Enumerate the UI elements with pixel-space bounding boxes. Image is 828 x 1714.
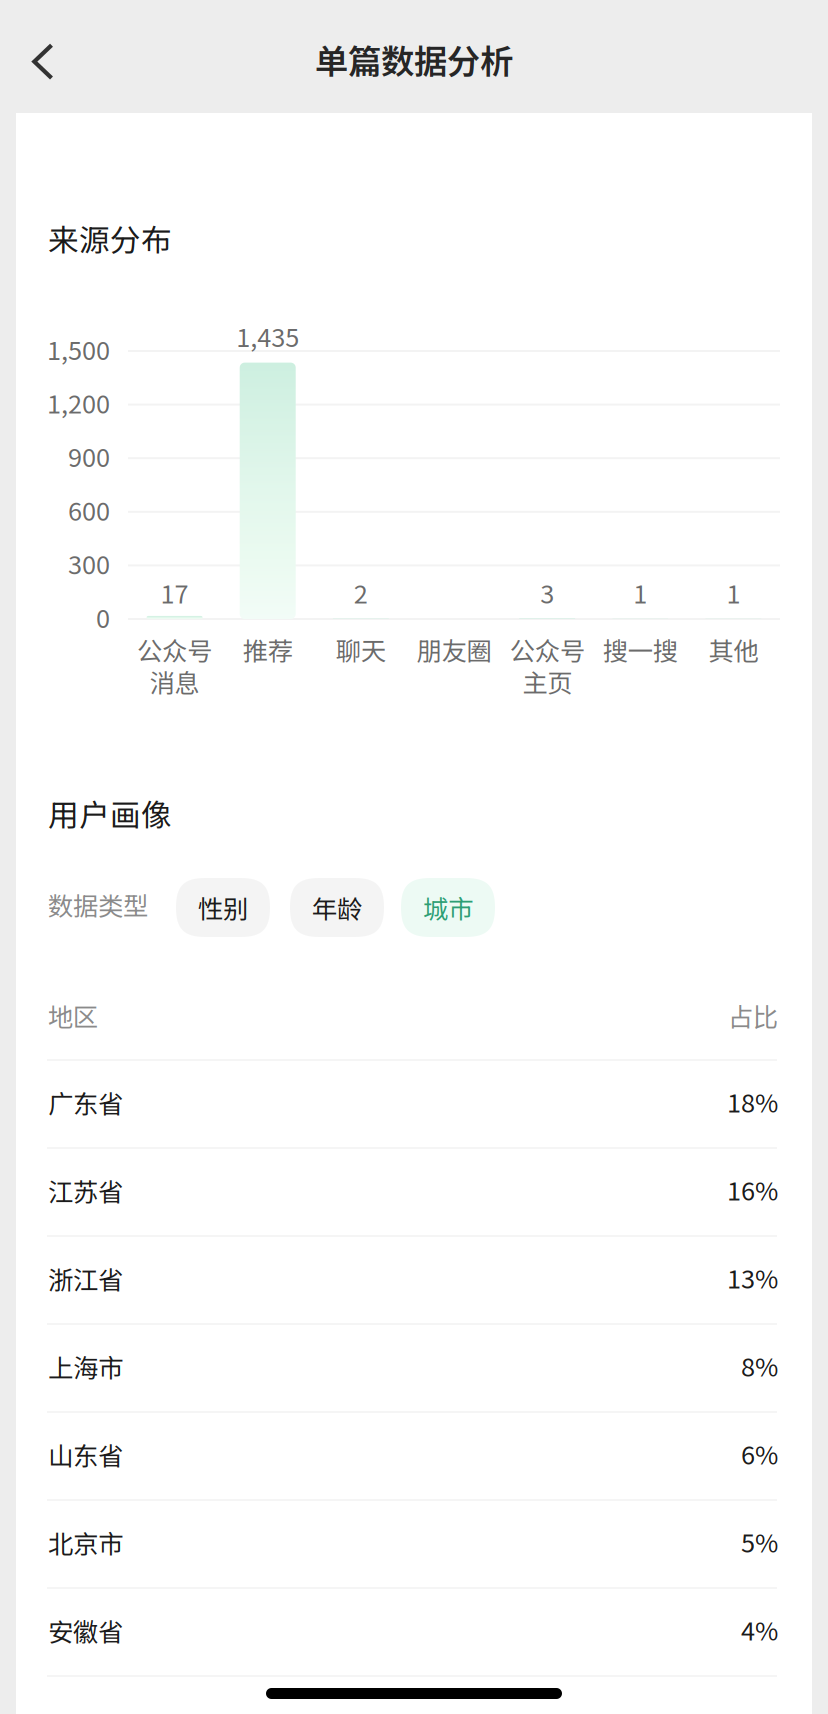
staticText: 5% bbox=[741, 1523, 778, 1560]
staticText: 性别 bbox=[198, 889, 248, 926]
staticText: 推荐 bbox=[243, 631, 293, 668]
button[interactable]: Back bbox=[0, 0, 80, 113]
staticText: 江苏省 bbox=[48, 1172, 123, 1209]
staticText: 0 bbox=[96, 598, 110, 635]
staticText: 900 bbox=[68, 438, 110, 474]
staticText: 城市 bbox=[423, 889, 473, 926]
staticText: 上海市 bbox=[48, 1348, 123, 1385]
staticText: 地区 bbox=[48, 997, 98, 1034]
staticText: 用户画像 bbox=[48, 791, 172, 835]
button[interactable]: 城市 bbox=[401, 878, 495, 937]
button[interactable]: 山东省 bbox=[48, 1412, 778, 1500]
button[interactable]: 年龄 bbox=[290, 878, 384, 937]
staticText: 搜一搜 bbox=[603, 631, 678, 668]
staticText: 公众号 bbox=[510, 631, 585, 668]
staticText: 来源分布 bbox=[48, 216, 172, 260]
button[interactable]: 安徽省 bbox=[48, 1588, 778, 1676]
staticText: 广东省 bbox=[48, 1084, 123, 1121]
button[interactable]: 上海市 bbox=[48, 1324, 778, 1412]
staticText: 占比 bbox=[728, 997, 778, 1034]
staticText: 4% bbox=[741, 1611, 778, 1648]
staticText: 13% bbox=[727, 1259, 778, 1296]
staticText: 安徽省 bbox=[48, 1612, 123, 1649]
staticText: 浙江省 bbox=[48, 1260, 123, 1297]
staticText: 其他 bbox=[708, 631, 758, 668]
staticText: 消息 bbox=[150, 663, 200, 700]
button[interactable]: 浙江省 bbox=[48, 1236, 778, 1324]
staticText: 6% bbox=[741, 1435, 778, 1472]
staticText: 1 bbox=[633, 574, 647, 611]
button[interactable]: 性别 bbox=[176, 878, 270, 937]
staticText: 8% bbox=[741, 1347, 778, 1384]
staticText: 1 bbox=[726, 574, 740, 611]
staticText: 600 bbox=[68, 491, 110, 528]
staticText: 聊天 bbox=[336, 631, 386, 668]
staticText: 1,500 bbox=[47, 330, 110, 367]
staticText: 单篇数据分析 bbox=[315, 35, 513, 83]
staticText: 山东省 bbox=[48, 1436, 123, 1473]
staticText: 1,435 bbox=[236, 318, 299, 354]
staticText: 数据类型 bbox=[48, 886, 148, 923]
staticText: 3 bbox=[540, 574, 554, 611]
staticText: 年龄 bbox=[312, 889, 362, 926]
staticText: 主页 bbox=[522, 663, 572, 700]
staticText: 朋友圈 bbox=[416, 631, 491, 668]
staticText: 17 bbox=[161, 574, 189, 611]
button[interactable]: 广东省 bbox=[48, 1060, 778, 1148]
staticText: 300 bbox=[68, 545, 110, 582]
staticText: 北京市 bbox=[48, 1524, 123, 1561]
staticText: 18% bbox=[727, 1083, 778, 1120]
staticText: 2 bbox=[354, 574, 368, 611]
staticText: 公众号 bbox=[137, 631, 212, 668]
button[interactable]: 北京市 bbox=[48, 1500, 778, 1588]
staticText: 1,200 bbox=[47, 384, 110, 421]
staticText: 16% bbox=[727, 1171, 778, 1208]
button[interactable]: 江苏省 bbox=[48, 1148, 778, 1236]
